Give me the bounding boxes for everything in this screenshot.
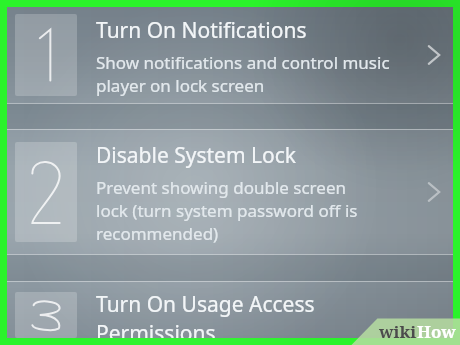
staticText: Show notifications and control music pla… bbox=[96, 51, 390, 97]
staticText: Disable System Lock bbox=[96, 141, 297, 170]
staticText: Turn On Usage Access bbox=[96, 290, 315, 319]
staticText: Turn On Notifications bbox=[96, 16, 307, 45]
staticText: Permissions bbox=[96, 319, 216, 338]
button[interactable]: Turn On Usage Access bbox=[7, 282, 453, 338]
staticText: wiki bbox=[379, 320, 417, 343]
staticText: Prevent showing double screen lock (turn… bbox=[96, 176, 358, 245]
staticText: How bbox=[417, 320, 456, 343]
button[interactable]: Disable System Lock bbox=[7, 130, 453, 254]
button[interactable]: Turn On Notifications bbox=[7, 7, 453, 103]
other: Open Turn On Notifications bbox=[421, 42, 447, 68]
other: Open Disable System Lock bbox=[421, 179, 447, 205]
